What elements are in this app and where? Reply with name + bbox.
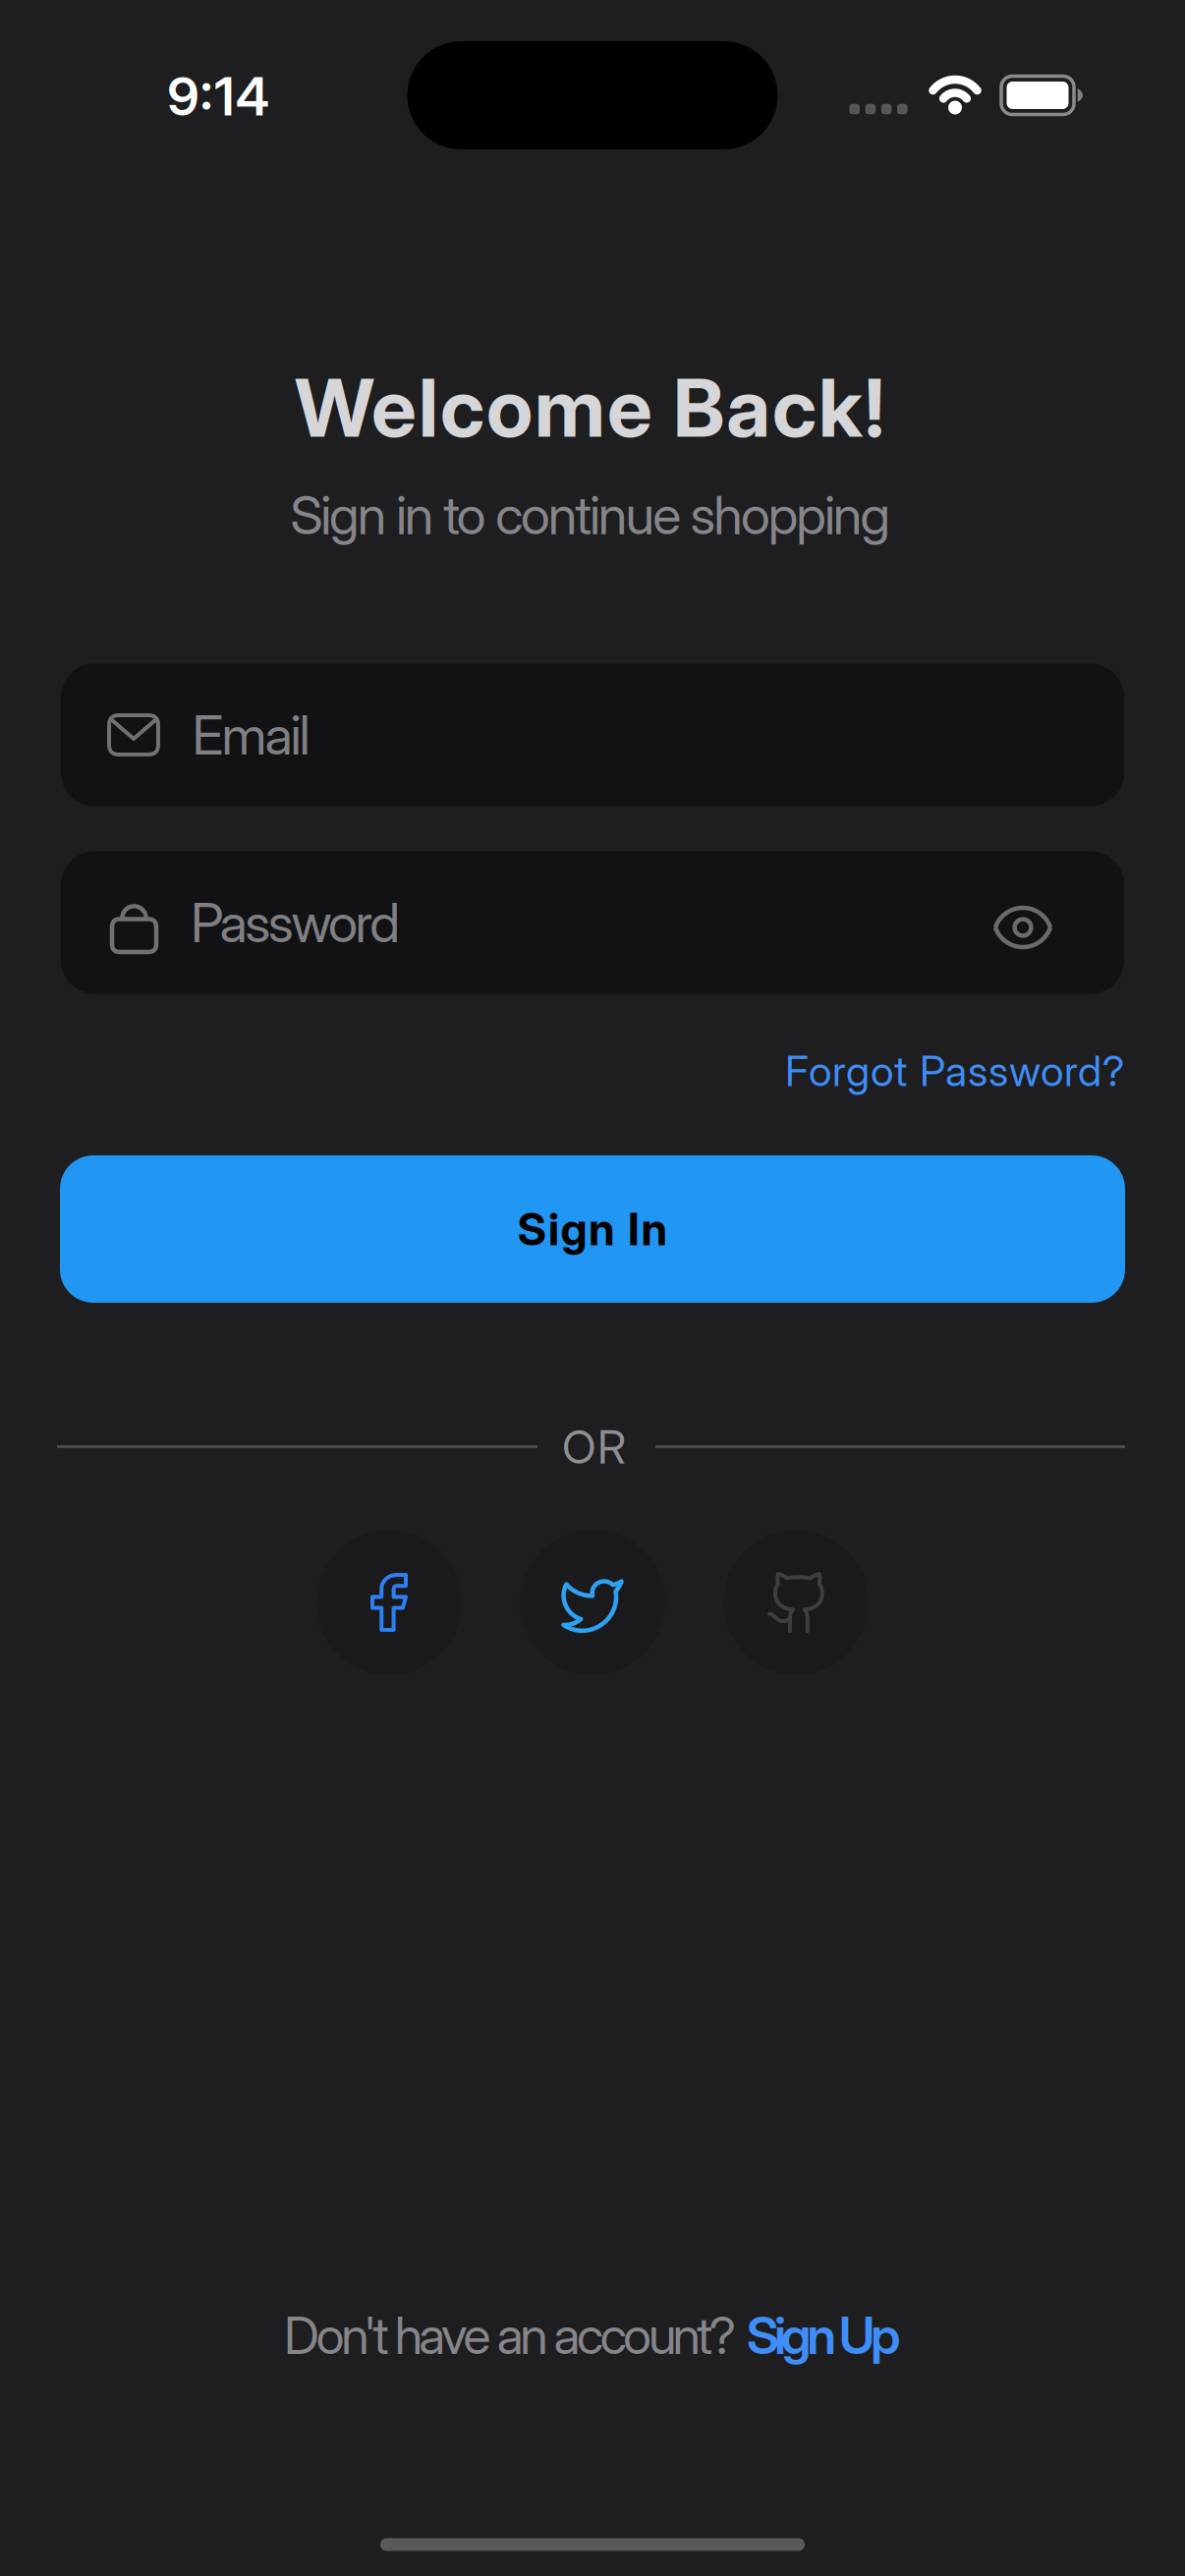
staticText: Email bbox=[192, 702, 310, 767]
button[interactable]: Sign in with Facebook bbox=[316, 1530, 462, 1675]
button[interactable]: Show password bbox=[995, 903, 1050, 942]
staticText: Forgot Password? bbox=[785, 1046, 1124, 1096]
button[interactable]: Sign In bbox=[60, 1155, 1125, 1303]
staticText: Sign in to continue shopping bbox=[290, 483, 891, 547]
button[interactable]: Don't have an account? bbox=[284, 2304, 901, 2366]
staticText: Sign Up bbox=[746, 2304, 901, 2366]
staticText: Don't have an account? bbox=[284, 2304, 736, 2366]
staticText: OR bbox=[562, 1420, 626, 1475]
staticText: Sign In bbox=[517, 1202, 668, 1256]
button[interactable]: Sign in with Twitter bbox=[520, 1530, 665, 1675]
staticText: Welcome Back! bbox=[295, 359, 884, 456]
staticText: Password bbox=[191, 890, 400, 955]
button[interactable]: Forgot Password? bbox=[785, 1046, 1124, 1096]
staticText: 9:14 bbox=[167, 65, 269, 128]
button[interactable]: Sign in with GitHub bbox=[723, 1530, 869, 1675]
